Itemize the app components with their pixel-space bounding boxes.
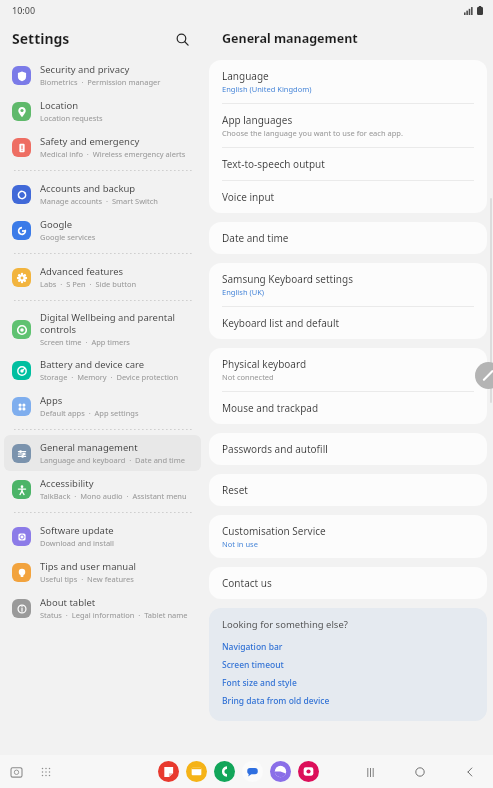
staticText: Safety and emergency bbox=[40, 135, 140, 148]
staticText: Advanced features bbox=[40, 265, 124, 278]
staticText: Battery and device care bbox=[40, 358, 145, 371]
button[interactable]: Reset bbox=[209, 474, 487, 506]
button[interactable]: internet bbox=[270, 761, 291, 782]
staticText: General management bbox=[222, 30, 358, 47]
staticText: Location bbox=[40, 99, 79, 112]
button[interactable]: Voice input bbox=[209, 181, 487, 213]
button[interactable]: General management bbox=[4, 435, 201, 471]
button[interactable]: camera bbox=[298, 761, 319, 782]
staticText: English (UK) bbox=[222, 287, 265, 297]
staticText: Language and keyboard · Date and time bbox=[40, 455, 185, 465]
button[interactable]: Physical keyboard bbox=[209, 348, 487, 391]
staticText: Accessibility bbox=[40, 477, 94, 490]
button[interactable]: Advanced features bbox=[4, 259, 201, 295]
button[interactable]: App languages bbox=[209, 104, 487, 147]
staticText: Screen time · App timers bbox=[40, 337, 130, 347]
button[interactable]: Security and privacy bbox=[4, 57, 201, 93]
staticText: Text-to-speech output bbox=[222, 157, 325, 171]
staticText: Mouse and trackpad bbox=[222, 401, 319, 415]
staticText: Contact us bbox=[222, 576, 272, 590]
button[interactable]: Bring data from old device bbox=[222, 692, 474, 710]
staticText: App languages bbox=[222, 113, 293, 127]
staticText: Choose the language you want to use for … bbox=[222, 128, 403, 138]
button[interactable]: Customisation Service bbox=[209, 515, 487, 558]
staticText: Tips and user manual bbox=[40, 560, 137, 573]
button[interactable]: Language bbox=[209, 60, 487, 103]
button[interactable]: messages bbox=[242, 761, 263, 782]
button[interactable]: files bbox=[186, 761, 207, 782]
button[interactable]: Accessibility bbox=[4, 471, 201, 507]
staticText: Medical info · Wireless emergency alerts bbox=[40, 149, 186, 159]
staticText: Digital Wellbeing and parental controls bbox=[40, 311, 175, 336]
staticText: Default apps · App settings bbox=[40, 408, 139, 418]
staticText: Bring data from old device bbox=[222, 695, 330, 707]
button[interactable]: Passwords and autofill bbox=[209, 433, 487, 465]
staticText: Google services bbox=[40, 232, 96, 242]
button[interactable]: phone bbox=[214, 761, 235, 782]
staticText: Date and time bbox=[222, 231, 289, 245]
button[interactable]: Accounts and backup bbox=[4, 176, 201, 212]
staticText: Voice input bbox=[222, 190, 275, 204]
button[interactable]: About tablet bbox=[4, 590, 201, 626]
staticText: Biometrics · Permission manager bbox=[40, 77, 161, 87]
staticText: Font size and style bbox=[222, 677, 297, 689]
staticText: 10:00 bbox=[12, 4, 36, 16]
button[interactable]: All apps bbox=[36, 762, 56, 782]
staticText: Customisation Service bbox=[222, 524, 326, 538]
button[interactable]: notes bbox=[158, 761, 179, 782]
button[interactable]: Search bbox=[171, 28, 193, 50]
staticText: Download and install bbox=[40, 538, 114, 548]
staticText: Labs · S Pen · Side button bbox=[40, 279, 137, 289]
button[interactable]: Safety and emergency bbox=[4, 129, 201, 165]
button[interactable]: Recents bbox=[6, 762, 26, 782]
staticText: Status · Legal information · Tablet name bbox=[40, 610, 188, 620]
button[interactable]: Date and time bbox=[209, 222, 487, 254]
button[interactable]: Apps bbox=[4, 388, 201, 424]
button[interactable]: Samsung Keyboard settings bbox=[209, 263, 487, 306]
button[interactable]: Home bbox=[409, 761, 431, 783]
staticText: Google bbox=[40, 218, 73, 231]
staticText: Software update bbox=[40, 524, 114, 537]
staticText: Not in use bbox=[222, 539, 258, 549]
button[interactable]: Back bbox=[459, 761, 481, 783]
staticText: Accounts and backup bbox=[40, 182, 136, 195]
button[interactable]: Text-to-speech output bbox=[209, 148, 487, 180]
button[interactable]: Google bbox=[4, 212, 201, 248]
staticText: Useful tips · New features bbox=[40, 574, 134, 584]
button[interactable]: Keyboard list and default bbox=[209, 307, 487, 339]
staticText: Language bbox=[222, 69, 269, 83]
staticText: Navigation bar bbox=[222, 641, 283, 653]
staticText: Screen timeout bbox=[222, 659, 284, 671]
staticText: Location requests bbox=[40, 113, 103, 123]
staticText: Storage · Memory · Device protection bbox=[40, 372, 179, 382]
staticText: General management bbox=[40, 441, 138, 454]
button[interactable]: Screen timeout bbox=[222, 656, 474, 674]
staticText: Manage accounts · Smart Switch bbox=[40, 196, 158, 206]
staticText: Looking for something else? bbox=[222, 618, 348, 631]
staticText: Keyboard list and default bbox=[222, 316, 340, 330]
staticText: Samsung Keyboard settings bbox=[222, 272, 353, 286]
button[interactable]: Font size and style bbox=[222, 674, 474, 692]
button[interactable]: Recent apps bbox=[359, 761, 381, 783]
button[interactable]: Tips and user manual bbox=[4, 554, 201, 590]
staticText: Reset bbox=[222, 483, 248, 497]
button[interactable]: Mouse and trackpad bbox=[209, 392, 487, 424]
staticText: TalkBack · Mono audio · Assistant menu bbox=[40, 491, 187, 501]
button[interactable]: Battery and device care bbox=[4, 352, 201, 388]
staticText: Security and privacy bbox=[40, 63, 130, 76]
staticText: About tablet bbox=[40, 596, 96, 609]
staticText: Apps bbox=[40, 394, 63, 407]
staticText: Passwords and autofill bbox=[222, 442, 328, 456]
staticText: Physical keyboard bbox=[222, 357, 307, 371]
button[interactable]: Contact us bbox=[209, 567, 487, 599]
button[interactable]: Navigation bar bbox=[222, 638, 474, 656]
staticText: English (United Kingdom) bbox=[222, 84, 312, 94]
staticText: Not connected bbox=[222, 372, 274, 382]
button[interactable]: Location bbox=[4, 93, 201, 129]
button[interactable]: Edit bbox=[475, 362, 493, 389]
button[interactable]: Software update bbox=[4, 518, 201, 554]
staticText: Settings bbox=[12, 29, 70, 48]
button[interactable]: Digital Wellbeing and parental controls bbox=[4, 306, 201, 352]
